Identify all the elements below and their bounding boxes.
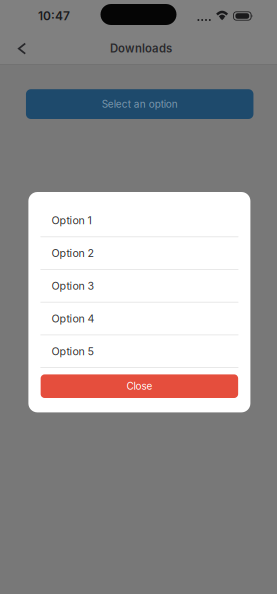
button[interactable]: Option 3 [28,270,250,303]
button[interactable]: Option 2 [28,237,250,270]
staticText: Option 3 [52,279,95,292]
button[interactable]: Option 4 [28,303,250,335]
button[interactable]: Option 1 [28,204,250,237]
staticText: Option 4 [52,312,95,325]
staticText: Option 5 [52,345,94,358]
staticText: Downloads [110,42,172,55]
staticText: Option 2 [52,247,95,260]
staticText: Option 1 [52,214,92,227]
button[interactable]: Back [0,32,42,64]
button[interactable]: Option 5 [28,335,250,368]
staticText: 10:47 [38,9,70,23]
button[interactable]: Select an option [26,89,253,119]
staticText: Select an option [102,98,178,110]
staticText: Close [126,380,152,392]
button[interactable]: Close [41,374,238,398]
